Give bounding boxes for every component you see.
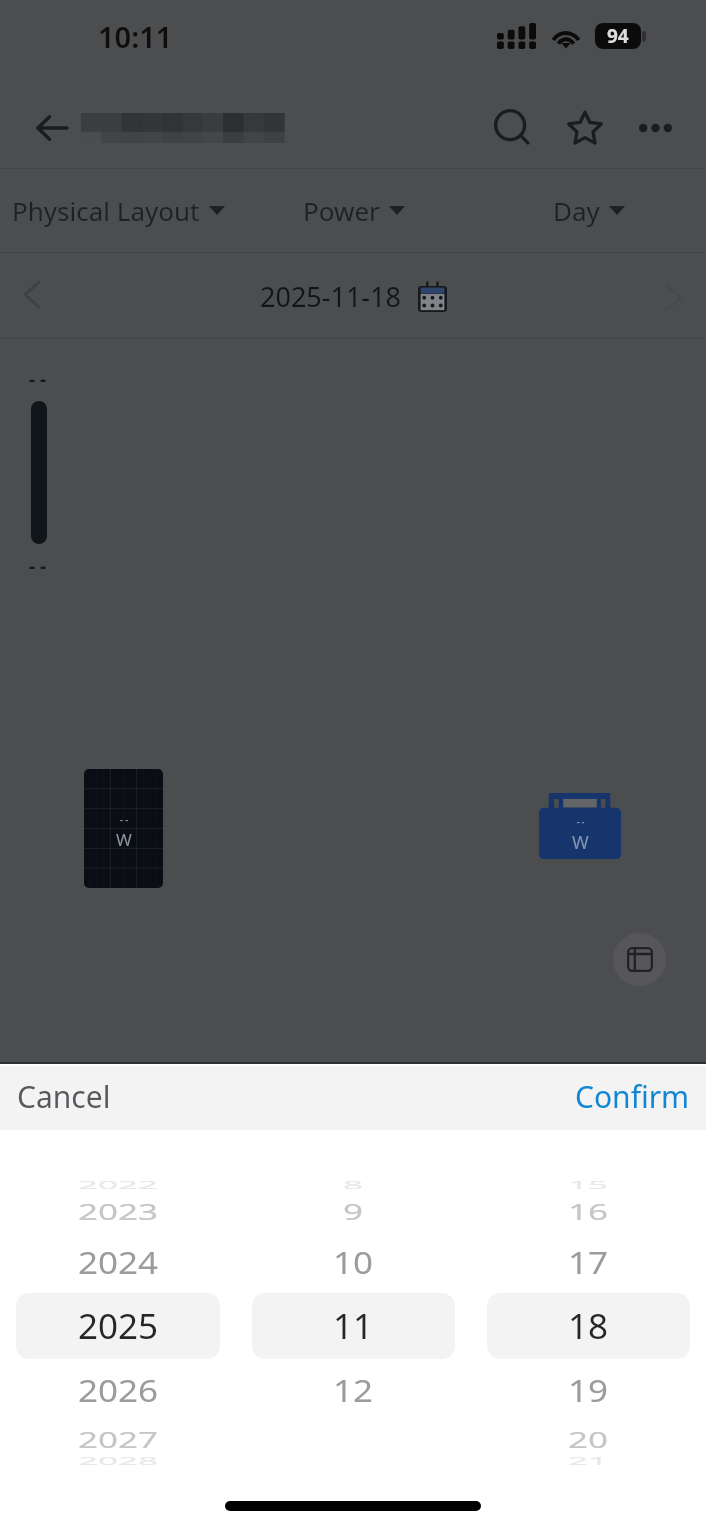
staticText: - - xyxy=(29,553,47,579)
button[interactable]: 18 xyxy=(471,1301,706,1351)
button[interactable]: 2023 xyxy=(0,1187,236,1237)
staticText: 2026 xyxy=(78,1370,159,1412)
staticText: Power xyxy=(303,193,380,228)
button[interactable]: Confirm xyxy=(559,1064,706,1129)
button[interactable]: 8 xyxy=(236,1160,471,1210)
staticText: 18 xyxy=(568,1302,609,1350)
staticText: 9 xyxy=(343,1197,364,1227)
staticText: 20 xyxy=(568,1426,609,1454)
button[interactable]: 16 xyxy=(471,1187,706,1237)
button[interactable]: Previous day xyxy=(12,274,52,314)
button[interactable]: 2025-11-18 xyxy=(260,278,447,315)
button[interactable]: 21 xyxy=(471,1436,706,1486)
staticText: 94 xyxy=(607,23,629,49)
button[interactable]: Day xyxy=(471,168,706,253)
button[interactable]: 12 xyxy=(236,1366,471,1416)
button[interactable]: 2028 xyxy=(0,1436,236,1486)
button[interactable]: 2024 xyxy=(0,1237,236,1287)
button[interactable]: Back xyxy=(22,98,82,158)
staticText: - - xyxy=(120,813,129,825)
button[interactable]: Table view xyxy=(613,933,666,986)
button[interactable]: 10 xyxy=(236,1237,471,1287)
staticText: 10 xyxy=(333,1241,374,1283)
button[interactable]: 19 xyxy=(471,1366,706,1416)
staticText: Cancel xyxy=(17,1076,111,1117)
button[interactable]: More options xyxy=(626,99,684,157)
staticText: 2024 xyxy=(78,1241,159,1283)
staticText: 12 xyxy=(333,1370,374,1412)
staticText: 2025-11-18 xyxy=(260,278,401,315)
staticText: W xyxy=(116,828,132,851)
button[interactable]: 2026 xyxy=(0,1366,236,1416)
staticText: Confirm xyxy=(575,1076,690,1117)
staticText: 2025 xyxy=(78,1302,159,1350)
button[interactable]: 20 xyxy=(471,1415,706,1465)
button[interactable]: 17 xyxy=(471,1237,706,1287)
button[interactable]: 9 xyxy=(236,1187,471,1237)
staticText: 2027 xyxy=(78,1426,159,1454)
button[interactable]: 2027 xyxy=(0,1415,236,1465)
staticText: 8 xyxy=(343,1177,364,1193)
staticText: 11 xyxy=(333,1302,374,1350)
button[interactable]: 15 xyxy=(471,1160,706,1210)
button[interactable]: Favorite xyxy=(556,98,614,156)
button[interactable]: Cancel xyxy=(0,1064,128,1129)
staticText: 2028 xyxy=(78,1454,159,1468)
staticText: 2022 xyxy=(78,1177,159,1193)
staticText: W xyxy=(572,830,589,855)
button[interactable]: Physical Layout xyxy=(0,168,236,253)
staticText: Day xyxy=(553,193,600,228)
staticText: Physical Layout xyxy=(12,193,200,228)
staticText: 19 xyxy=(568,1370,609,1412)
staticText: - - xyxy=(29,366,47,392)
button[interactable]: 11 xyxy=(236,1301,471,1351)
staticText: 17 xyxy=(568,1241,609,1283)
button[interactable]: 2022 xyxy=(0,1160,236,1210)
staticText: 10:11 xyxy=(98,17,173,56)
staticText: - - xyxy=(577,816,585,827)
staticText: 16 xyxy=(568,1197,609,1227)
button[interactable]: Search xyxy=(483,98,541,156)
staticText: 21 xyxy=(568,1454,609,1468)
staticText: 2023 xyxy=(78,1197,159,1227)
button[interactable]: Power xyxy=(236,168,471,253)
staticText: 15 xyxy=(568,1177,609,1193)
button[interactable]: 2025 xyxy=(0,1301,236,1351)
